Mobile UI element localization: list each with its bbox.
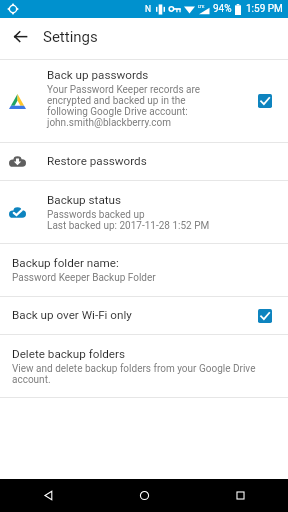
button[interactable]: Back bbox=[0, 18, 43, 59]
staticText: Backup folder name: bbox=[12, 257, 119, 270]
staticText: 1:59 PM bbox=[246, 3, 283, 15]
staticText: View and delete backup folders from your… bbox=[12, 363, 272, 385]
staticText: Backup status bbox=[47, 194, 122, 207]
button[interactable]: Delete backup folders bbox=[0, 335, 288, 397]
staticText: Back up over Wi-Fi only bbox=[12, 309, 242, 322]
button[interactable]: Back up over Wi-Fi only bbox=[0, 297, 288, 334]
button[interactable]: Recents bbox=[192, 479, 288, 512]
staticText: Delete backup folders bbox=[12, 348, 126, 361]
staticText: Restore passwords bbox=[47, 155, 147, 168]
staticText: Passwords backed up bbox=[47, 209, 145, 220]
staticText: Your Password Keeper records are encrypt… bbox=[47, 84, 213, 128]
staticText: Settings bbox=[43, 28, 98, 46]
staticText: LTE bbox=[198, 4, 205, 9]
button[interactable]: Backup status bbox=[0, 181, 288, 243]
button[interactable]: Back bbox=[0, 479, 96, 512]
staticText: Password Keeper Backup Folder bbox=[12, 272, 156, 283]
staticText: Back up passwords bbox=[47, 69, 149, 82]
button[interactable]: Back up passwords bbox=[0, 60, 288, 142]
staticText: N bbox=[145, 4, 152, 14]
staticText: Last backed up: 2017-11-28 1:52 PM bbox=[47, 220, 210, 231]
button[interactable]: Restore passwords bbox=[0, 143, 288, 180]
button[interactable]: Backup folder name: bbox=[0, 244, 288, 296]
staticText: 94% bbox=[213, 3, 232, 15]
button[interactable]: Home bbox=[96, 479, 192, 512]
